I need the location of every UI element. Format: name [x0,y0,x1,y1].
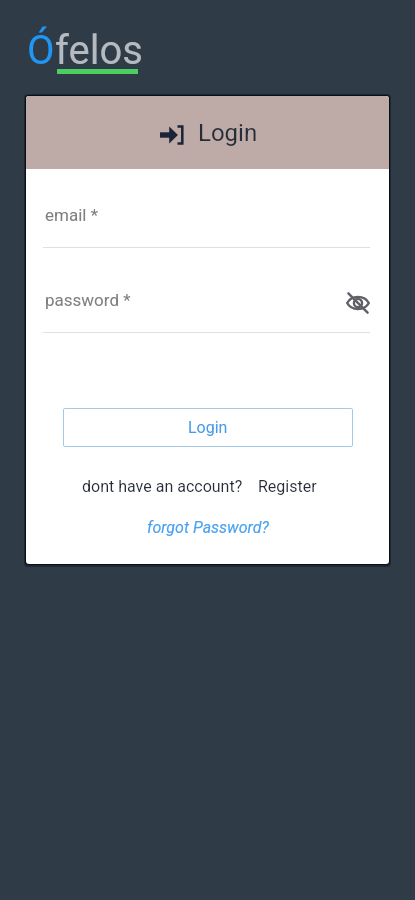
staticText: password * [45,290,131,310]
button[interactable]: Show password [342,287,374,319]
staticText: Register [258,477,317,496]
button[interactable]: Login [63,408,353,447]
staticText: dont have an account? [82,477,243,496]
staticText: Ó [27,27,55,74]
button[interactable]: forgot Password? [141,512,275,543]
staticText: Login [198,119,258,147]
staticText: felos [55,27,143,74]
button[interactable]: Register [252,471,323,502]
staticText: forgot Password? [147,518,269,537]
staticText: email * [45,205,98,225]
staticText: Login [188,418,228,437]
